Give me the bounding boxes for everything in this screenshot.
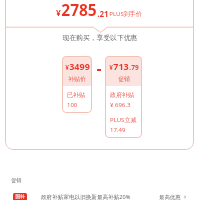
staticText: 17.49	[110, 126, 126, 134]
staticText: ¥	[56, 7, 61, 19]
staticText: .79	[129, 63, 139, 72]
staticText: .21	[97, 8, 109, 19]
staticText: 促销	[11, 177, 22, 184]
staticText: 最高优惠	[159, 194, 181, 200]
staticText: 国补	[15, 194, 25, 200]
staticText: 补贴价	[68, 75, 86, 82]
staticText: ¥	[65, 63, 69, 72]
staticText: PLUS立减	[110, 116, 137, 124]
staticText: 3499	[69, 60, 90, 72]
staticText: 713	[113, 60, 129, 72]
staticText: ¥ 696.3	[110, 101, 131, 109]
staticText: 100	[67, 101, 78, 109]
staticText: ¥	[109, 63, 113, 72]
staticText: 政府补贴	[110, 91, 134, 99]
staticText: 政府补贴家电以旧换新最高补贴20%	[41, 193, 131, 200]
button[interactable]: ¥	[105, 56, 142, 138]
staticText: 促销	[118, 75, 130, 82]
button[interactable]: ¥	[62, 56, 92, 113]
button[interactable]: 国补	[13, 193, 187, 200]
staticText: 现在购买，享受以下优惠	[0, 33, 200, 42]
staticText: 2785	[61, 0, 97, 20]
staticText: PLUS到手价	[109, 10, 142, 18]
staticText: 已补贴	[67, 91, 85, 99]
